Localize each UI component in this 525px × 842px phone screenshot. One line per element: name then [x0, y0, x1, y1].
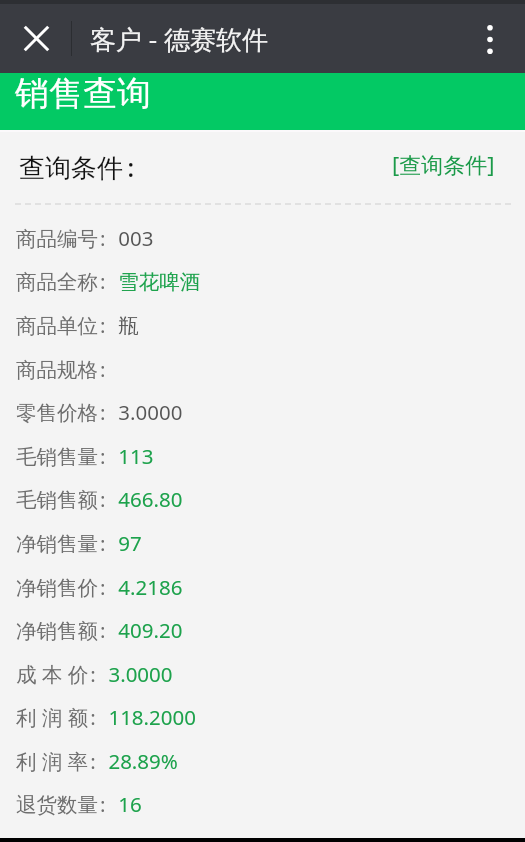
- button[interactable]: 商品规格 :: [0, 347, 525, 391]
- button[interactable]: More options: [455, 4, 525, 73]
- button[interactable]: [查询条件]: [388, 144, 499, 190]
- staticText: 成 本 价 : 3.0000: [16, 660, 173, 688]
- staticText: 净销售量 : 97: [16, 529, 142, 557]
- button[interactable]: 商品全称 : 雪花啤酒: [0, 259, 525, 303]
- staticText: 商品单位 : 瓶: [16, 311, 139, 339]
- button[interactable]: 商品单位 : 瓶: [0, 303, 525, 347]
- staticText: 净销售价 : 4.2186: [16, 573, 183, 601]
- button[interactable]: 净销售量 : 97: [0, 521, 525, 565]
- button[interactable]: 成 本 价 : 3.0000: [0, 652, 525, 696]
- button[interactable]: 利 润 额 : 118.2000: [0, 695, 525, 739]
- staticText: 客户 - 德赛软件: [90, 21, 268, 57]
- staticText: 净销售额 : 409.20: [16, 616, 183, 644]
- button[interactable]: 退货数量 : 16: [0, 782, 525, 826]
- staticText: 退货数量 : 16: [16, 790, 142, 818]
- button[interactable]: 净销售价 : 4.2186: [0, 565, 525, 609]
- button[interactable]: 商品编号 : 003: [0, 216, 525, 260]
- staticText: 毛销售量 : 113: [16, 442, 154, 470]
- button[interactable]: 毛销售量 : 113: [0, 434, 525, 478]
- button[interactable]: 利 润 率 : 28.89%: [0, 739, 525, 783]
- staticText: 利 润 率 : 28.89%: [16, 747, 178, 775]
- button[interactable]: 零售价格 : 3.0000: [0, 390, 525, 434]
- staticText: 利 润 额 : 118.2000: [16, 703, 196, 731]
- button[interactable]: 净销售额 : 409.20: [0, 608, 525, 652]
- button[interactable]: 毛销售额 : 466.80: [0, 477, 525, 521]
- staticText: 毛销售额 : 466.80: [16, 485, 183, 513]
- staticText: 商品编号 : 003: [16, 224, 154, 252]
- staticText: 查询条件 :: [19, 149, 135, 185]
- staticText: 零售价格 : 3.0000: [16, 398, 183, 426]
- button[interactable]: Close: [0, 4, 72, 73]
- staticText: 销售查询: [15, 72, 151, 115]
- staticText: 商品规格 :: [16, 355, 119, 383]
- staticText: [查询条件]: [392, 149, 495, 179]
- staticText: 商品全称 : 雪花啤酒: [16, 267, 201, 295]
